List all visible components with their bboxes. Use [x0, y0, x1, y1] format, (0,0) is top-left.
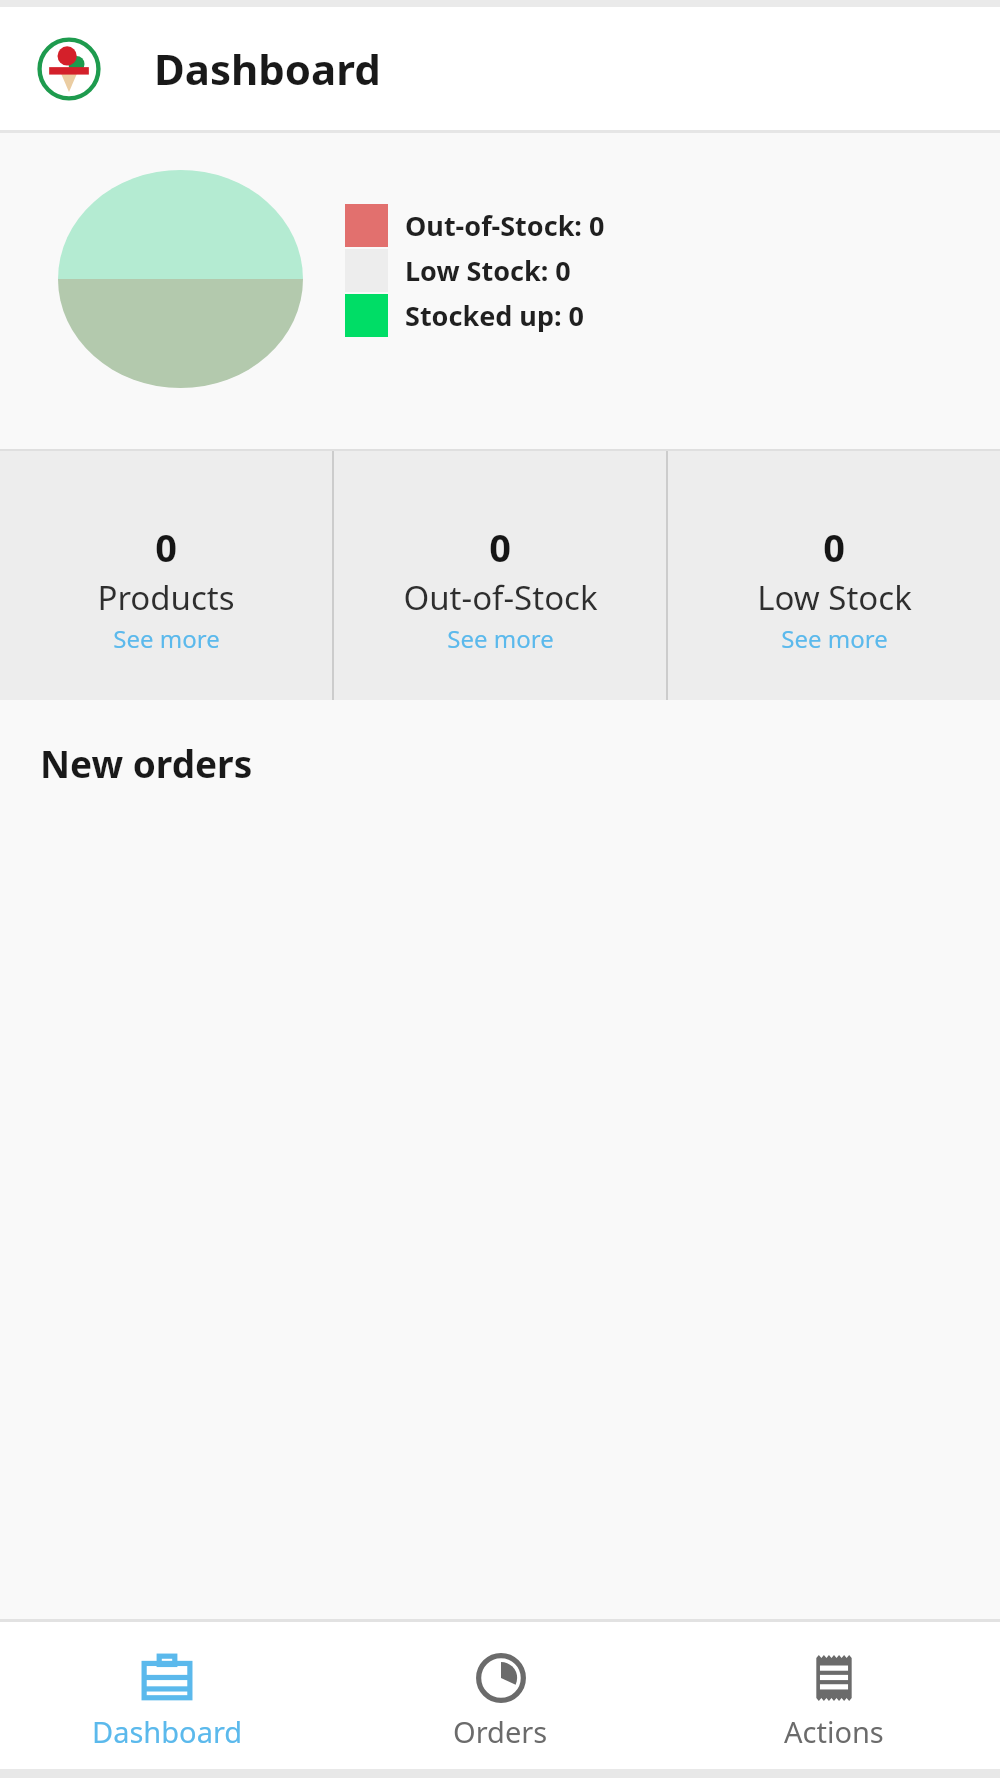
staticText: See more [113, 622, 220, 655]
staticText: 0 [489, 521, 511, 573]
button[interactable]: 0 [668, 451, 1000, 700]
button[interactable]: Actions [667, 1622, 1000, 1769]
staticText: Low Stock [757, 575, 912, 620]
staticText: Actions [784, 1712, 884, 1751]
staticText: 0 [155, 521, 177, 573]
staticText: 0 [823, 521, 845, 573]
staticText: Low Stock: 0 [405, 252, 571, 289]
staticText: Dashboard [154, 40, 381, 97]
staticText: See more [447, 622, 554, 655]
button[interactable]: Dashboard [0, 1622, 334, 1769]
button[interactable]: 0 [0, 451, 332, 700]
staticText: Out-of-Stock [403, 575, 598, 620]
button[interactable]: Orders [334, 1622, 667, 1769]
staticText: Orders [453, 1712, 548, 1751]
staticText: New orders [40, 738, 253, 788]
staticText: See more [781, 622, 888, 655]
button[interactable]: 0 [334, 451, 666, 700]
staticText: Products [97, 575, 235, 620]
staticText: Out-of-Stock: 0 [405, 207, 605, 244]
staticText: Stocked up: 0 [405, 297, 585, 334]
staticText: Dashboard [92, 1712, 243, 1751]
